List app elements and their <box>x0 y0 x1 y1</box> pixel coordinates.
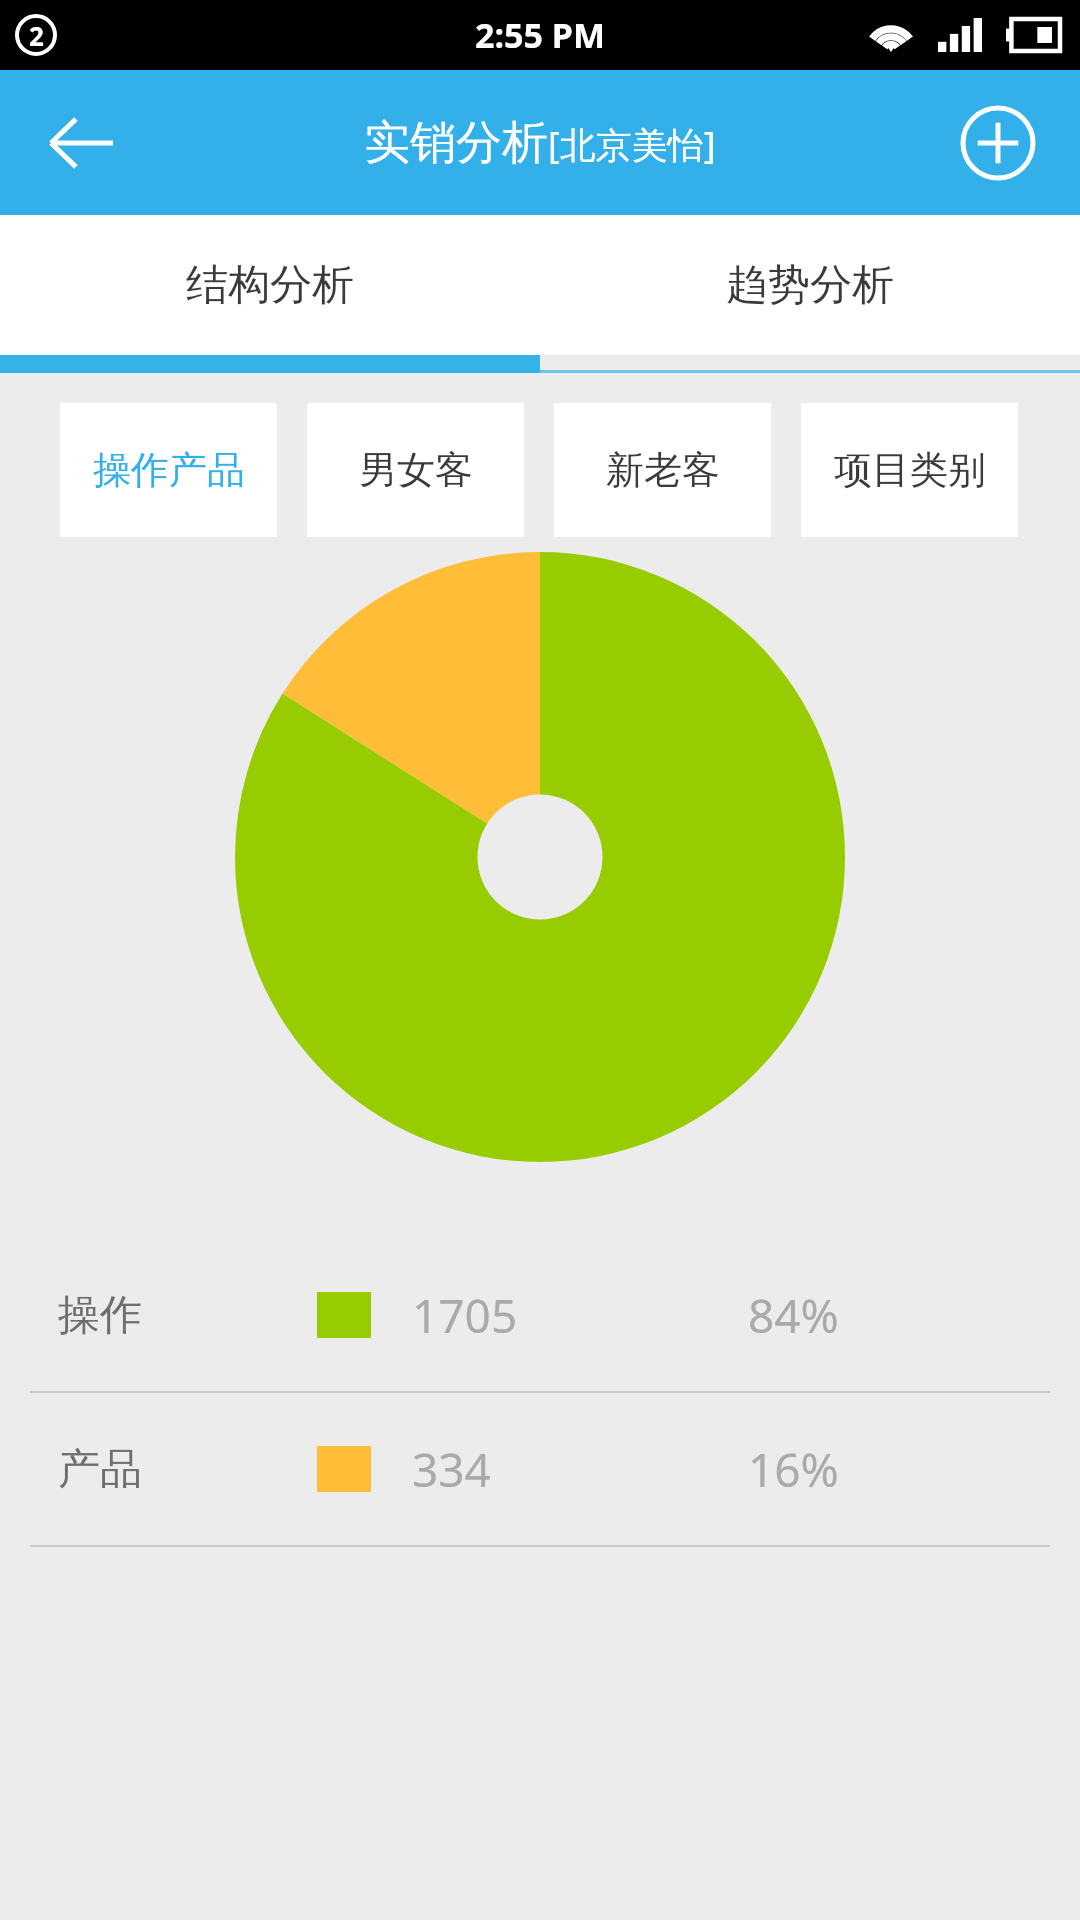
staticText: 2:55 PM <box>475 12 605 58</box>
staticText: 334 <box>412 1438 491 1501</box>
button[interactable]: 项目类别 <box>801 403 1018 537</box>
button[interactable]: 产品 <box>0 1393 1080 1545</box>
staticText: 结构分析 <box>186 259 354 312</box>
button[interactable]: 男女客 <box>307 403 524 537</box>
staticText: 2 <box>29 18 44 53</box>
staticText: 项目类别 <box>834 446 986 494</box>
staticText: 趋势分析 <box>726 259 894 312</box>
staticText: [北京美怡] <box>548 120 716 169</box>
staticText: 84% <box>748 1284 839 1347</box>
staticText: 操作 <box>58 1289 142 1342</box>
staticText: 1705 <box>412 1284 518 1347</box>
staticText: 实销分析 <box>364 114 548 172</box>
staticText: 产品 <box>58 1443 142 1496</box>
button[interactable]: 结构分析 <box>0 215 540 355</box>
button[interactable]: 新老客 <box>554 403 771 537</box>
button[interactable]: Add <box>948 93 1048 193</box>
staticText: 16% <box>748 1438 839 1501</box>
button[interactable]: 操作产品 <box>60 403 277 537</box>
button[interactable]: Back <box>26 88 136 198</box>
staticText: 男女客 <box>359 446 473 494</box>
button[interactable]: 操作 <box>0 1239 1080 1391</box>
staticText: 新老客 <box>606 446 720 494</box>
staticText: 操作产品 <box>93 446 245 494</box>
button[interactable]: 趋势分析 <box>540 215 1080 355</box>
